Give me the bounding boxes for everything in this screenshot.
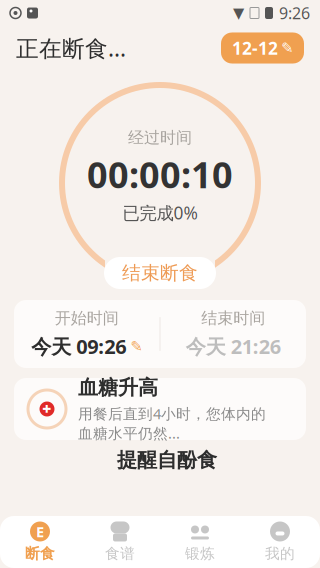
- button[interactable]: ✚: [0, 378, 320, 440]
- staticText: 用餐后直到4小时，您体内的血糖水平仍然...: [78, 404, 266, 443]
- staticText: 结束断食: [122, 261, 198, 284]
- staticText: 经过时间: [128, 128, 192, 147]
- button[interactable]: 开始时间: [14, 308, 159, 360]
- staticText: ▼: [233, 5, 244, 21]
- staticText: ✎: [130, 338, 142, 355]
- staticText: 结束时间: [201, 308, 265, 328]
- staticText: 食谱: [105, 544, 135, 562]
- button[interactable]: 结束断食: [104, 257, 216, 289]
- button[interactable]: 12-12: [221, 32, 304, 63]
- staticText: 今天 21:26: [186, 333, 281, 360]
- staticText: 9:26: [279, 2, 310, 24]
- staticText: 今天 09:26: [31, 333, 126, 360]
- staticText: 我的: [265, 544, 295, 562]
- button[interactable]: 结束时间: [160, 308, 306, 360]
- button[interactable]: 锻炼: [160, 516, 240, 568]
- staticText: 正在断食...: [16, 33, 126, 63]
- button[interactable]: 我的: [240, 516, 320, 568]
- staticText: 提醒自酚食: [117, 448, 217, 472]
- staticText: 已完成0%: [122, 201, 197, 224]
- staticText: 血糖升高: [78, 375, 158, 400]
- staticText: 锻炼: [185, 544, 215, 562]
- staticText: E: [36, 522, 44, 541]
- button[interactable]: 食谱: [80, 516, 160, 568]
- button[interactable]: E: [0, 516, 80, 568]
- staticText: 开始时间: [55, 308, 119, 328]
- staticText: 00:00:10: [87, 150, 233, 198]
- staticText: ✚: [42, 403, 51, 415]
- staticText: 12-12: [232, 36, 278, 59]
- staticText: ✎: [281, 40, 293, 56]
- staticText: 断食: [25, 544, 55, 562]
